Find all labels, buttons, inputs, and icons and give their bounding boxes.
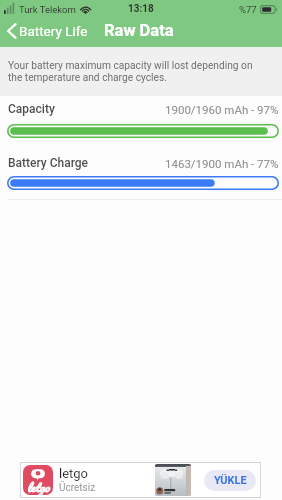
staticText: Ücretsiz	[59, 482, 96, 494]
staticText: Raw Data	[104, 21, 174, 40]
other: Back	[6, 22, 18, 40]
staticText: 1900/1960 mAh - 97%	[165, 103, 279, 116]
staticText: Your battery maximum capacity will lost …	[8, 60, 268, 84]
staticText: Turk Telekom	[19, 4, 76, 15]
button[interactable]: letgo	[20, 462, 261, 498]
staticText: Battery Life	[19, 23, 88, 39]
staticText: 1463/1900 mAh - 77%	[165, 157, 279, 170]
button[interactable]: Back	[0, 19, 94, 43]
staticText: Battery Charge	[8, 156, 89, 170]
staticText: letgo	[27, 478, 50, 495]
staticText: Capacity	[8, 102, 55, 116]
staticText: 13:18	[128, 3, 154, 15]
staticText: letgo	[59, 466, 89, 481]
button[interactable]: YÜKLE	[204, 470, 256, 491]
staticText: %77	[239, 4, 257, 15]
staticText: YÜKLE	[214, 474, 247, 487]
